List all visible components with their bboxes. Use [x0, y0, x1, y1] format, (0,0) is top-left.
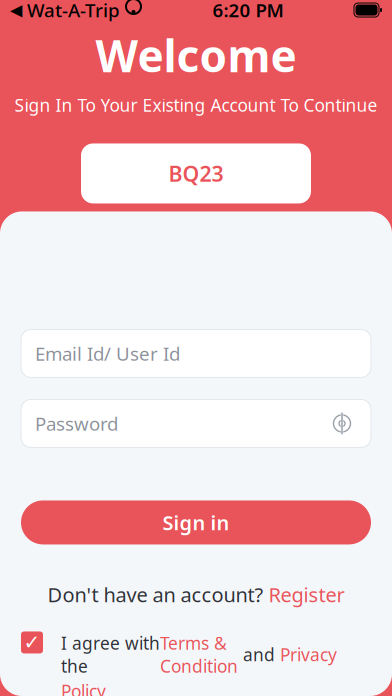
button[interactable]: BQ23	[81, 143, 311, 203]
staticText: Register	[268, 581, 344, 608]
button[interactable]: Show password	[327, 408, 357, 438]
staticText: Terms & Condition	[160, 631, 238, 677]
staticText: ✓	[23, 631, 40, 654]
staticText: Don't have an account?	[47, 581, 268, 608]
staticText: and	[238, 643, 280, 666]
button[interactable]: Sign in	[21, 500, 371, 544]
staticText: BQ23	[168, 159, 223, 188]
staticText: Sign in	[162, 509, 229, 536]
button[interactable]: Terms & Condition	[160, 631, 238, 677]
staticText: Email Id/ User Id	[35, 341, 180, 366]
staticText: Sign In To Your Existing Account To Cont…	[14, 93, 377, 116]
staticText: Wat-A-Trip	[27, 0, 120, 22]
button[interactable]: Privacy	[280, 643, 337, 666]
button[interactable]: Policy	[61, 679, 106, 696]
staticText: ◀	[10, 1, 22, 19]
button[interactable]: Don't have an account?	[21, 580, 371, 608]
staticText: Privacy	[280, 643, 337, 666]
staticText: Welcome	[95, 26, 296, 84]
staticText: Policy	[61, 679, 106, 696]
staticText: I agree with the	[61, 631, 160, 677]
staticText: 6:20 PM	[212, 0, 283, 22]
button[interactable]: Agree to terms	[21, 631, 43, 653]
staticText: Password	[35, 411, 118, 436]
